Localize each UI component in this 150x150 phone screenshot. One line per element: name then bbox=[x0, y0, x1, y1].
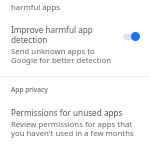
button[interactable]: Improve harmful app detection toggle bbox=[122, 31, 140, 42]
staticText: Improve harmful app detection bbox=[11, 24, 118, 45]
staticText: Send unknown apps to Google for better d… bbox=[11, 46, 118, 66]
staticText: Review permissions for apps that you hav… bbox=[11, 119, 140, 139]
staticText: harmful apps bbox=[11, 2, 60, 13]
staticText: Permissions for unused apps bbox=[11, 107, 123, 118]
button[interactable]: harmful apps bbox=[0, 0, 150, 15]
staticText: App privacy bbox=[11, 85, 48, 94]
button[interactable]: Permissions for unused apps bbox=[0, 106, 150, 143]
button[interactable]: Improve harmful app detection bbox=[0, 23, 150, 69]
